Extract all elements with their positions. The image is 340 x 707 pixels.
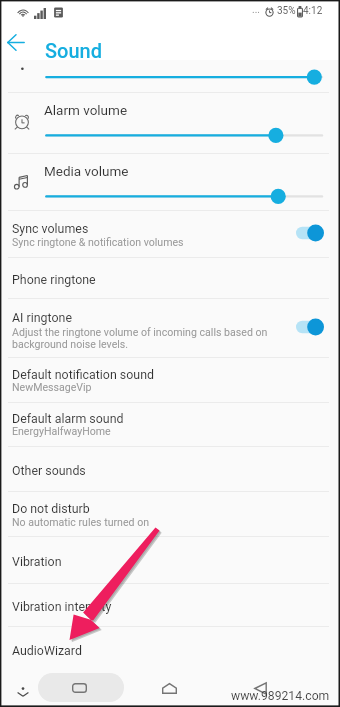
staticText: www.989214.com [231, 689, 330, 703]
button[interactable]: AI ringtone [0, 298, 340, 357]
button[interactable]: Recent apps [38, 673, 124, 702]
button[interactable]: Default notification sound [0, 357, 340, 403]
staticText: Sync ringtone & notification volumes [12, 236, 184, 248]
button[interactable]: Vibration [0, 536, 340, 583]
staticText: EnergyHalfwayHome [12, 425, 111, 437]
staticText: Media volume [44, 163, 129, 179]
staticText: Do not disturb [12, 501, 90, 516]
button[interactable]: Back [2, 28, 30, 56]
staticText: AI ringtone [12, 310, 72, 325]
button[interactable]: Alarm volume [0, 92, 340, 153]
button[interactable]: Do not disturb [0, 491, 340, 536]
button[interactable]: Vibration intensity [0, 583, 340, 626]
staticText: Sync volumes [12, 221, 89, 236]
button[interactable] [0, 60, 340, 92]
staticText: AudioWizard [12, 643, 82, 658]
staticText: Alarm volume [44, 102, 128, 118]
button[interactable]: Default alarm sound [0, 402, 340, 446]
staticText: 4:12 [303, 5, 323, 17]
staticText: Sound [45, 39, 103, 62]
button[interactable]: Phone ringtone [0, 257, 340, 299]
staticText: Default notification sound [12, 367, 154, 382]
staticText: Phone ringtone [12, 272, 96, 287]
button[interactable]: Home [157, 676, 182, 701]
staticText: Vibration intensity [12, 599, 112, 614]
button[interactable]: Other sounds [0, 446, 340, 491]
button[interactable]: Sync volumes [0, 210, 340, 257]
staticText: 35% [277, 5, 296, 17]
staticText: ... [252, 4, 260, 16]
button[interactable]: AudioWizard [0, 626, 340, 670]
staticText: Adjust the ringtone volume of incoming c… [12, 326, 268, 350]
button[interactable]: Hide navigation bar [12, 680, 34, 702]
button[interactable]: Media volume [0, 153, 340, 210]
staticText: NewMessageVip [12, 381, 92, 393]
button[interactable]: Back [248, 676, 273, 701]
staticText: No automatic rules turned on [12, 516, 150, 528]
staticText: Other sounds [12, 463, 86, 478]
staticText: Default alarm sound [12, 411, 124, 426]
staticText: Vibration [12, 554, 62, 569]
